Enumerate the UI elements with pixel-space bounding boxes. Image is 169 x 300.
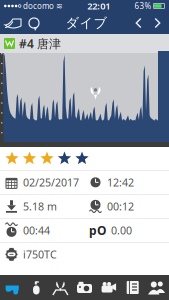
staticText: i750TC (23, 247, 57, 261)
staticText: ダイブ (65, 15, 107, 31)
staticText: pO (89, 222, 106, 238)
staticText: 22:01 (87, 0, 110, 12)
button[interactable]: Previous dive (129, 12, 148, 34)
staticText: #4 唐津 (19, 35, 61, 51)
button[interactable]: Next dive (148, 12, 167, 34)
button[interactable]: Photos (72, 275, 97, 300)
button[interactable]: Dives (0, 275, 24, 300)
staticText: 0.00 (111, 223, 132, 237)
button[interactable]: Buddies (145, 275, 169, 300)
staticText: 63% (134, 1, 151, 11)
button[interactable]: Comments (24, 12, 44, 34)
staticText: docomo (23, 1, 54, 11)
button[interactable]: Logbook (2, 12, 24, 34)
button[interactable]: Videos (97, 275, 121, 300)
staticText: ≋ (56, 1, 63, 11)
staticText: 00:44 (23, 223, 50, 237)
staticText: 12:42 (107, 175, 134, 189)
button[interactable]: Dive sites (48, 275, 72, 300)
button[interactable]: Logbook (121, 275, 145, 300)
staticText: 00:12 (107, 199, 134, 213)
staticText: 02/25/2017 (23, 175, 79, 189)
button[interactable]: Equipment (24, 275, 48, 300)
staticText: 5.18 m (23, 199, 57, 213)
